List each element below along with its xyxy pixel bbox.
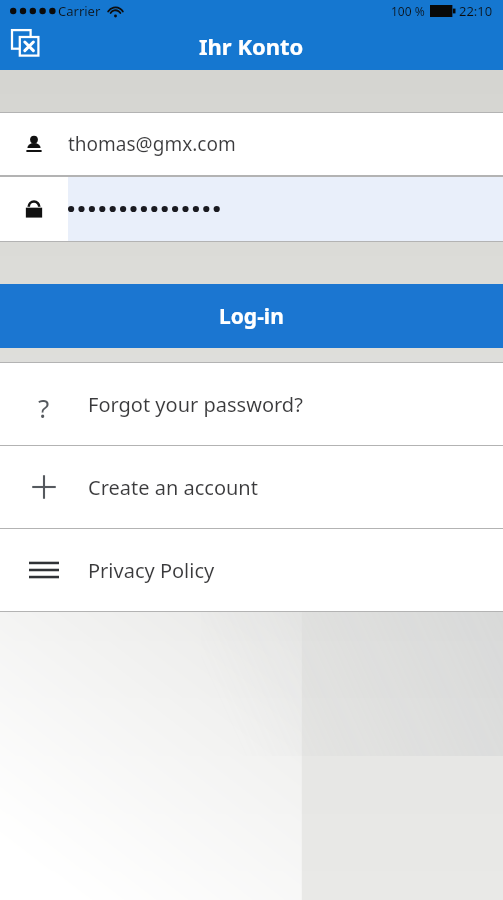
staticText: 100 %	[391, 3, 425, 19]
staticText: Privacy Policy	[88, 557, 215, 584]
staticText: Ihr Konto	[199, 31, 304, 61]
button[interactable]: Privacy Policy	[0, 529, 503, 611]
button[interactable]: Create an account	[0, 446, 503, 528]
button[interactable]: ?	[0, 363, 503, 445]
button[interactable]: thomas@gmx.com	[0, 113, 503, 175]
staticText: Carrier	[58, 2, 101, 20]
button[interactable]: Log-in	[0, 284, 503, 348]
staticText: Log-in	[219, 302, 284, 331]
button[interactable]: Close	[10, 26, 44, 60]
button[interactable]	[0, 176, 503, 242]
staticText: thomas@gmx.com	[68, 131, 236, 157]
staticText: Create an account	[88, 474, 258, 501]
staticText: Forgot your password?	[88, 391, 303, 418]
staticText: 22:10	[459, 2, 493, 20]
staticText: ?	[38, 390, 50, 418]
